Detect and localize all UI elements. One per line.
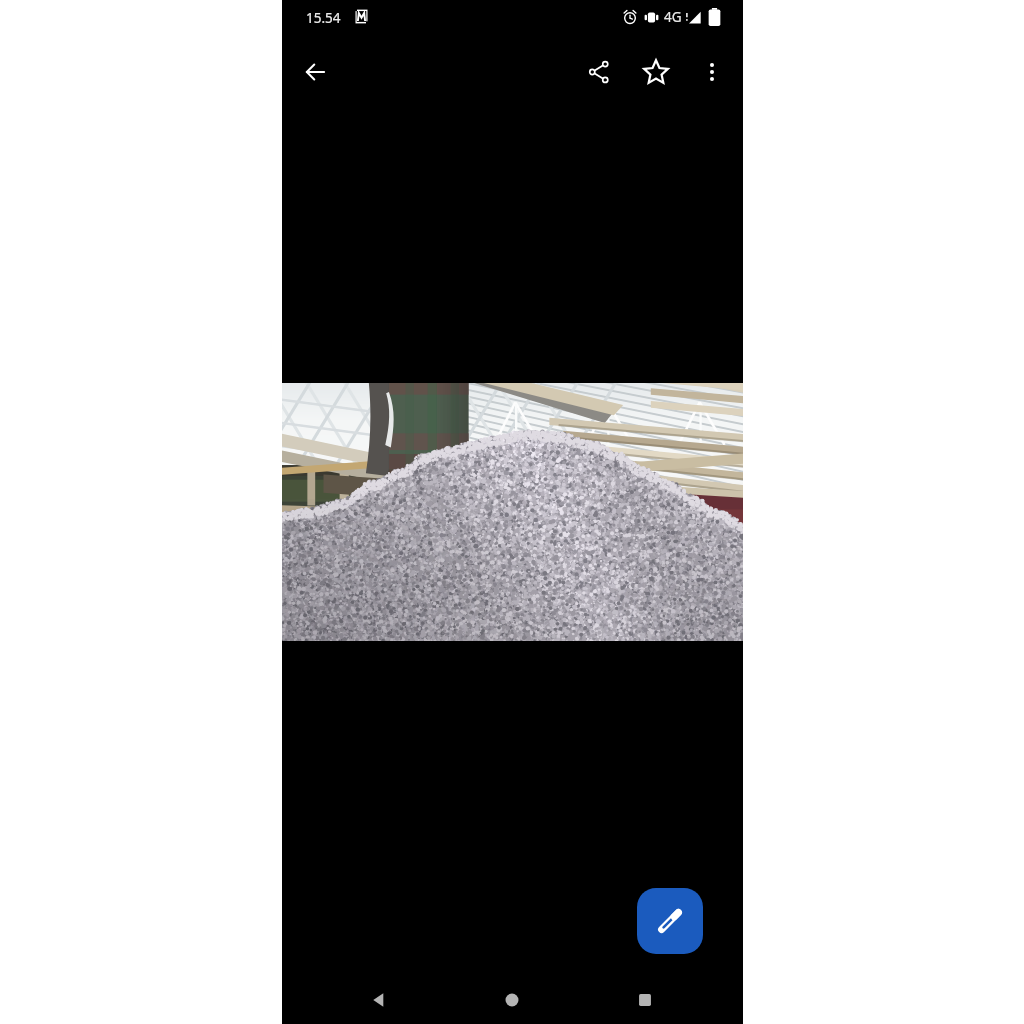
staticText: 4G [664,8,682,26]
button[interactable]: Recents [625,980,665,1020]
button[interactable]: Back [295,52,335,92]
button[interactable]: Edit [637,888,703,954]
staticText: 15.54 [306,9,341,27]
button[interactable]: Favorite [636,52,676,92]
button[interactable]: More options [692,52,732,92]
button[interactable]: Back [359,980,399,1020]
button[interactable]: Share [579,52,619,92]
button[interactable]: Home [492,980,532,1020]
